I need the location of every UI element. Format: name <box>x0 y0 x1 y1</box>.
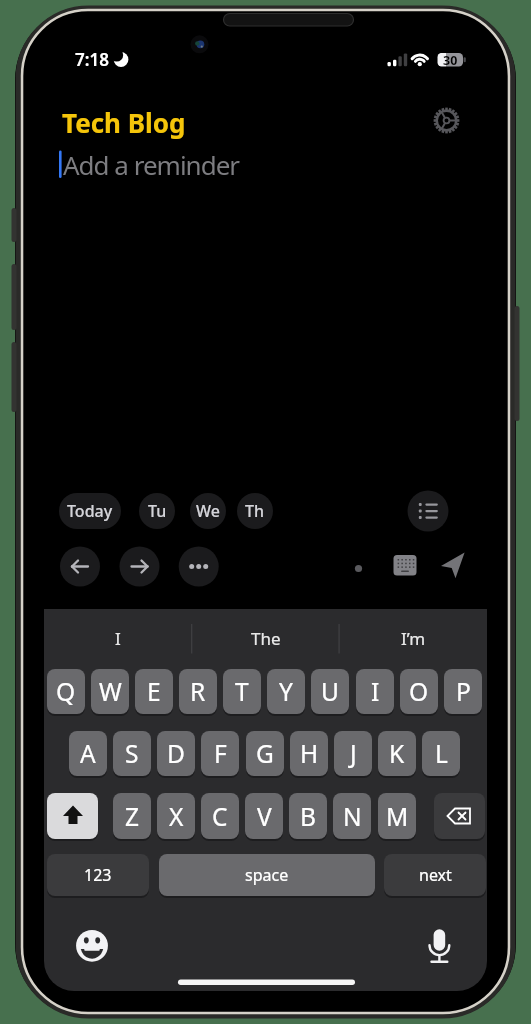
staticText: V <box>257 800 272 833</box>
button[interactable] <box>440 551 470 581</box>
staticText: We <box>196 500 220 522</box>
button[interactable]: Th <box>237 493 273 529</box>
button[interactable] <box>120 547 160 587</box>
staticText: R <box>190 675 206 708</box>
staticText: D <box>167 737 185 770</box>
staticText: Y <box>279 675 293 708</box>
button[interactable] <box>431 105 462 136</box>
staticText: I <box>115 627 121 650</box>
staticText: 7:18 <box>75 48 109 70</box>
staticText: Today <box>67 500 113 522</box>
button[interactable] <box>60 547 100 587</box>
staticText: K <box>389 737 405 770</box>
staticText: Z <box>125 800 140 833</box>
staticText: Th <box>245 500 265 522</box>
staticText: space <box>245 864 289 886</box>
button[interactable]: We <box>190 493 226 529</box>
button[interactable]: E <box>135 669 173 714</box>
button[interactable] <box>74 928 110 964</box>
button[interactable]: C <box>201 793 239 839</box>
staticText: Tu <box>148 500 167 522</box>
button[interactable]: next <box>384 854 486 896</box>
staticText: X <box>169 800 184 833</box>
staticText: L <box>435 737 448 770</box>
button[interactable]: space <box>159 854 375 896</box>
staticText: W <box>99 675 122 708</box>
button[interactable]: A <box>69 731 107 776</box>
staticText: J <box>350 737 357 770</box>
button[interactable]: K <box>378 731 416 776</box>
button[interactable]: The <box>192 620 340 656</box>
staticText: P <box>456 675 471 708</box>
staticText: next <box>419 864 452 886</box>
staticText: Add a reminder <box>63 147 240 182</box>
button[interactable]: U <box>311 669 349 714</box>
button[interactable]: L <box>422 731 460 776</box>
button[interactable] <box>424 926 456 964</box>
staticText: G <box>256 737 274 770</box>
staticText: M <box>386 800 409 833</box>
button[interactable] <box>434 793 485 839</box>
staticText: F <box>214 737 227 770</box>
button[interactable]: P <box>444 669 482 714</box>
staticText: Tech Blog <box>62 105 186 140</box>
button[interactable] <box>408 491 449 532</box>
button[interactable] <box>179 547 219 587</box>
button[interactable] <box>47 793 98 839</box>
staticText: S <box>125 737 139 770</box>
button[interactable]: B <box>289 793 327 839</box>
button[interactable]: Add a reminder <box>56 146 436 182</box>
button[interactable]: D <box>157 731 195 776</box>
button[interactable]: O <box>400 669 438 714</box>
button[interactable]: I’m <box>339 620 487 656</box>
button[interactable]: T <box>223 669 261 714</box>
button[interactable]: W <box>91 669 129 714</box>
staticText: T <box>235 675 249 708</box>
button[interactable]: N <box>333 793 371 839</box>
button[interactable]: Z <box>113 793 151 839</box>
button[interactable]: Today <box>59 493 121 529</box>
staticText: 123 <box>84 864 112 886</box>
staticText: U <box>321 675 339 708</box>
button[interactable]: I <box>44 620 192 656</box>
button[interactable]: Y <box>267 669 305 714</box>
button[interactable]: G <box>246 731 284 776</box>
staticText: I’m <box>401 627 426 650</box>
staticText: C <box>212 800 228 833</box>
staticText: The <box>251 627 281 650</box>
button[interactable]: 123 <box>47 854 149 896</box>
button[interactable]: V <box>245 793 283 839</box>
staticText: B <box>300 800 316 833</box>
staticText: O <box>409 675 429 708</box>
button[interactable]: M <box>378 793 416 839</box>
staticText: H <box>300 737 319 770</box>
staticText: E <box>147 675 161 708</box>
button[interactable]: R <box>179 669 217 714</box>
button[interactable] <box>390 551 420 579</box>
staticText: I <box>371 675 380 708</box>
staticText: 30 <box>443 52 458 68</box>
button[interactable]: Tu <box>139 493 175 529</box>
staticText: N <box>343 800 362 833</box>
button[interactable]: J <box>334 731 372 776</box>
button[interactable]: I <box>356 669 394 714</box>
button[interactable]: F <box>201 731 239 776</box>
button[interactable]: H <box>290 731 328 776</box>
button[interactable]: X <box>157 793 195 839</box>
staticText: Q <box>56 675 76 708</box>
button[interactable]: S <box>113 731 151 776</box>
button[interactable]: Q <box>47 669 85 714</box>
staticText: A <box>80 737 96 770</box>
